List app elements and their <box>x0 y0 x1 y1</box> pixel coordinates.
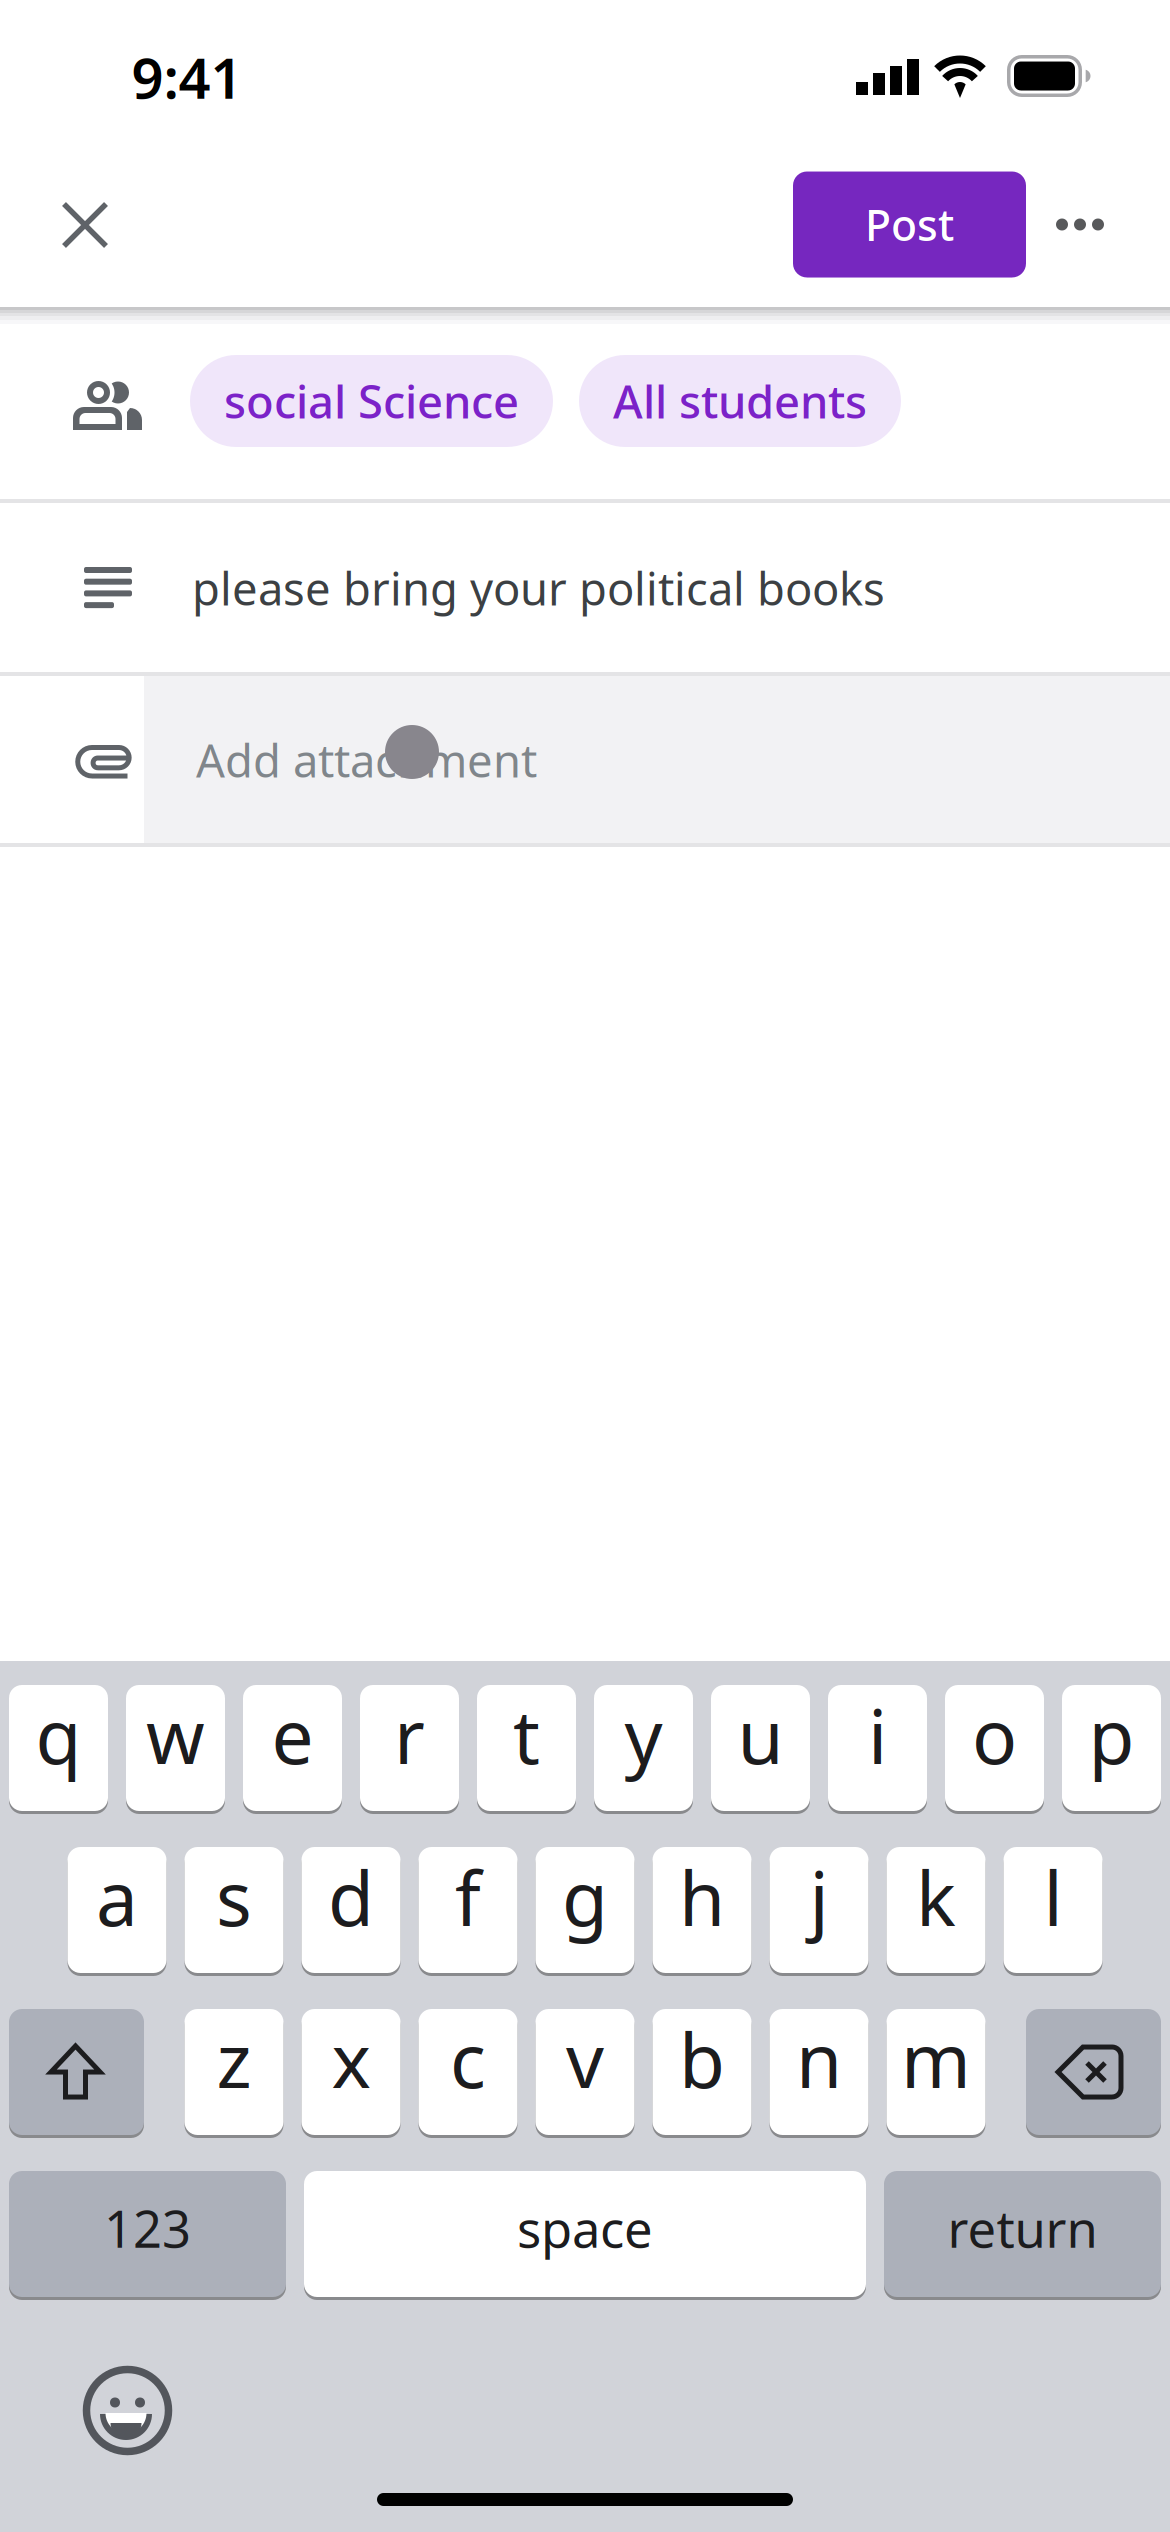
button[interactable]: s <box>184 1847 283 1973</box>
staticText: j <box>809 1847 828 1947</box>
staticText: 9:41 <box>131 40 242 114</box>
button[interactable]: f <box>418 1847 517 1973</box>
staticText: q <box>35 1685 81 1785</box>
staticText: m <box>901 2009 971 2109</box>
button[interactable]: p <box>1062 1685 1161 1811</box>
button[interactable]: g <box>535 1847 634 1973</box>
button[interactable]: b <box>652 2009 751 2135</box>
staticText: space <box>517 2194 653 2262</box>
staticText: 123 <box>104 2194 191 2262</box>
button[interactable]: u <box>711 1685 810 1811</box>
staticText: return <box>947 2194 1097 2262</box>
staticText: l <box>1043 1847 1062 1947</box>
staticText: s <box>216 1847 252 1947</box>
staticText: f <box>455 1847 481 1947</box>
button[interactable]: o <box>945 1685 1044 1811</box>
button[interactable]: t <box>477 1685 576 1811</box>
button[interactable] <box>1048 174 1148 274</box>
staticText: All students <box>613 371 867 431</box>
button[interactable]: d <box>301 1847 400 1973</box>
button[interactable]: m <box>886 2009 985 2135</box>
button[interactable]: space <box>304 2171 866 2297</box>
staticText: please bring your political books <box>192 558 885 618</box>
button[interactable] <box>35 175 135 275</box>
button[interactable] <box>77 2360 177 2460</box>
staticText: r <box>394 1685 425 1785</box>
button[interactable]: i <box>828 1685 927 1811</box>
staticText: e <box>271 1685 313 1785</box>
button[interactable]: w <box>126 1685 225 1811</box>
button[interactable]: l <box>1003 1847 1102 1973</box>
button[interactable]: please bring your political books <box>0 503 1170 672</box>
button[interactable]: c <box>418 2009 517 2135</box>
button[interactable]: x <box>301 2009 400 2135</box>
staticText: c <box>450 2009 486 2109</box>
staticText: b <box>679 2009 725 2109</box>
button[interactable]: social Science <box>190 355 553 447</box>
button[interactable]: a <box>67 1847 166 1973</box>
staticText: u <box>737 1685 783 1785</box>
button[interactable]: z <box>184 2009 283 2135</box>
staticText: a <box>96 1847 138 1947</box>
staticText: g <box>562 1847 608 1947</box>
button[interactable]: Post <box>793 171 1026 277</box>
staticText: n <box>796 2009 842 2109</box>
button[interactable]: n <box>769 2009 868 2135</box>
button[interactable]: j <box>769 1847 868 1973</box>
staticText: y <box>624 1685 662 1785</box>
staticText: Post <box>865 196 954 253</box>
staticText: w <box>146 1685 205 1785</box>
button[interactable]: Add attachment <box>0 676 1170 843</box>
button[interactable] <box>9 2009 144 2135</box>
button[interactable]: k <box>886 1847 985 1973</box>
button[interactable]: y <box>594 1685 693 1811</box>
button[interactable] <box>1026 2009 1161 2135</box>
button[interactable]: r <box>360 1685 459 1811</box>
staticText: social Science <box>224 371 519 431</box>
staticText: t <box>513 1685 540 1785</box>
button[interactable]: h <box>652 1847 751 1973</box>
button[interactable]: return <box>884 2171 1161 2297</box>
staticText: x <box>331 2009 370 2109</box>
staticText: z <box>216 2009 251 2109</box>
staticText: p <box>1088 1685 1134 1785</box>
button[interactable]: q <box>9 1685 108 1811</box>
staticText: Add attachment <box>196 730 537 790</box>
button[interactable]: v <box>535 2009 634 2135</box>
staticText: d <box>328 1847 374 1947</box>
staticText: k <box>916 1847 956 1947</box>
button[interactable]: e <box>243 1685 342 1811</box>
button[interactable]: 123 <box>9 2171 286 2297</box>
staticText: i <box>868 1685 887 1785</box>
button[interactable]: All students <box>579 355 901 447</box>
staticText: h <box>679 1847 725 1947</box>
staticText: v <box>566 2009 604 2109</box>
staticText: o <box>972 1685 1017 1785</box>
